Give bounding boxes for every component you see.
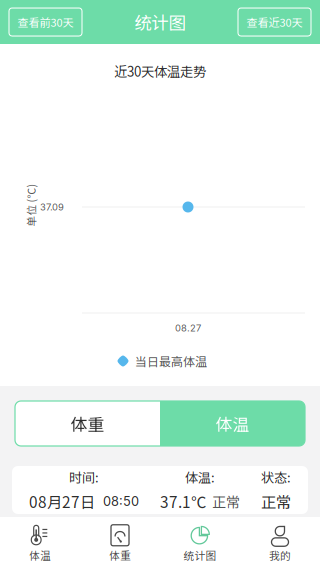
staticText: 查看近30天 <box>246 14 302 30</box>
staticText: 统计图 <box>183 547 216 563</box>
staticText: 体温 <box>29 547 51 563</box>
staticText: 近30天体温走势 <box>114 61 206 81</box>
button[interactable]: 查看近30天 <box>238 8 311 36</box>
staticText: 当日最高体温 <box>135 352 207 370</box>
staticText: 体温: <box>185 467 215 486</box>
staticText: 37.09 <box>40 201 64 213</box>
button[interactable]: 体重 <box>80 517 160 569</box>
staticText: 时间: <box>69 467 99 486</box>
staticText: 体温 <box>215 411 249 436</box>
staticText: 体重 <box>70 411 104 436</box>
staticText: 单位 (℃) <box>9 197 52 213</box>
button[interactable]: 我的 <box>240 517 320 569</box>
button[interactable]: 统计图 <box>160 517 240 569</box>
staticText: 查看前30天 <box>17 14 73 30</box>
staticText: 正常 <box>261 490 291 512</box>
staticText: 37.1℃ <box>160 490 206 512</box>
button[interactable]: 查看前30天 <box>9 8 82 36</box>
staticText: 08月27日 <box>29 490 95 512</box>
button[interactable]: 体温 <box>0 517 80 569</box>
staticText: 08:50 <box>103 494 139 509</box>
staticText: 统计图 <box>134 9 185 35</box>
button[interactable]: 体温 <box>160 401 305 446</box>
staticText: 正常 <box>212 491 240 512</box>
button[interactable]: 体重 <box>15 401 160 446</box>
staticText: 体重 <box>109 547 131 563</box>
staticText: 08.27 <box>175 322 201 334</box>
staticText: 状态: <box>261 467 291 486</box>
staticText: 我的 <box>269 547 291 563</box>
